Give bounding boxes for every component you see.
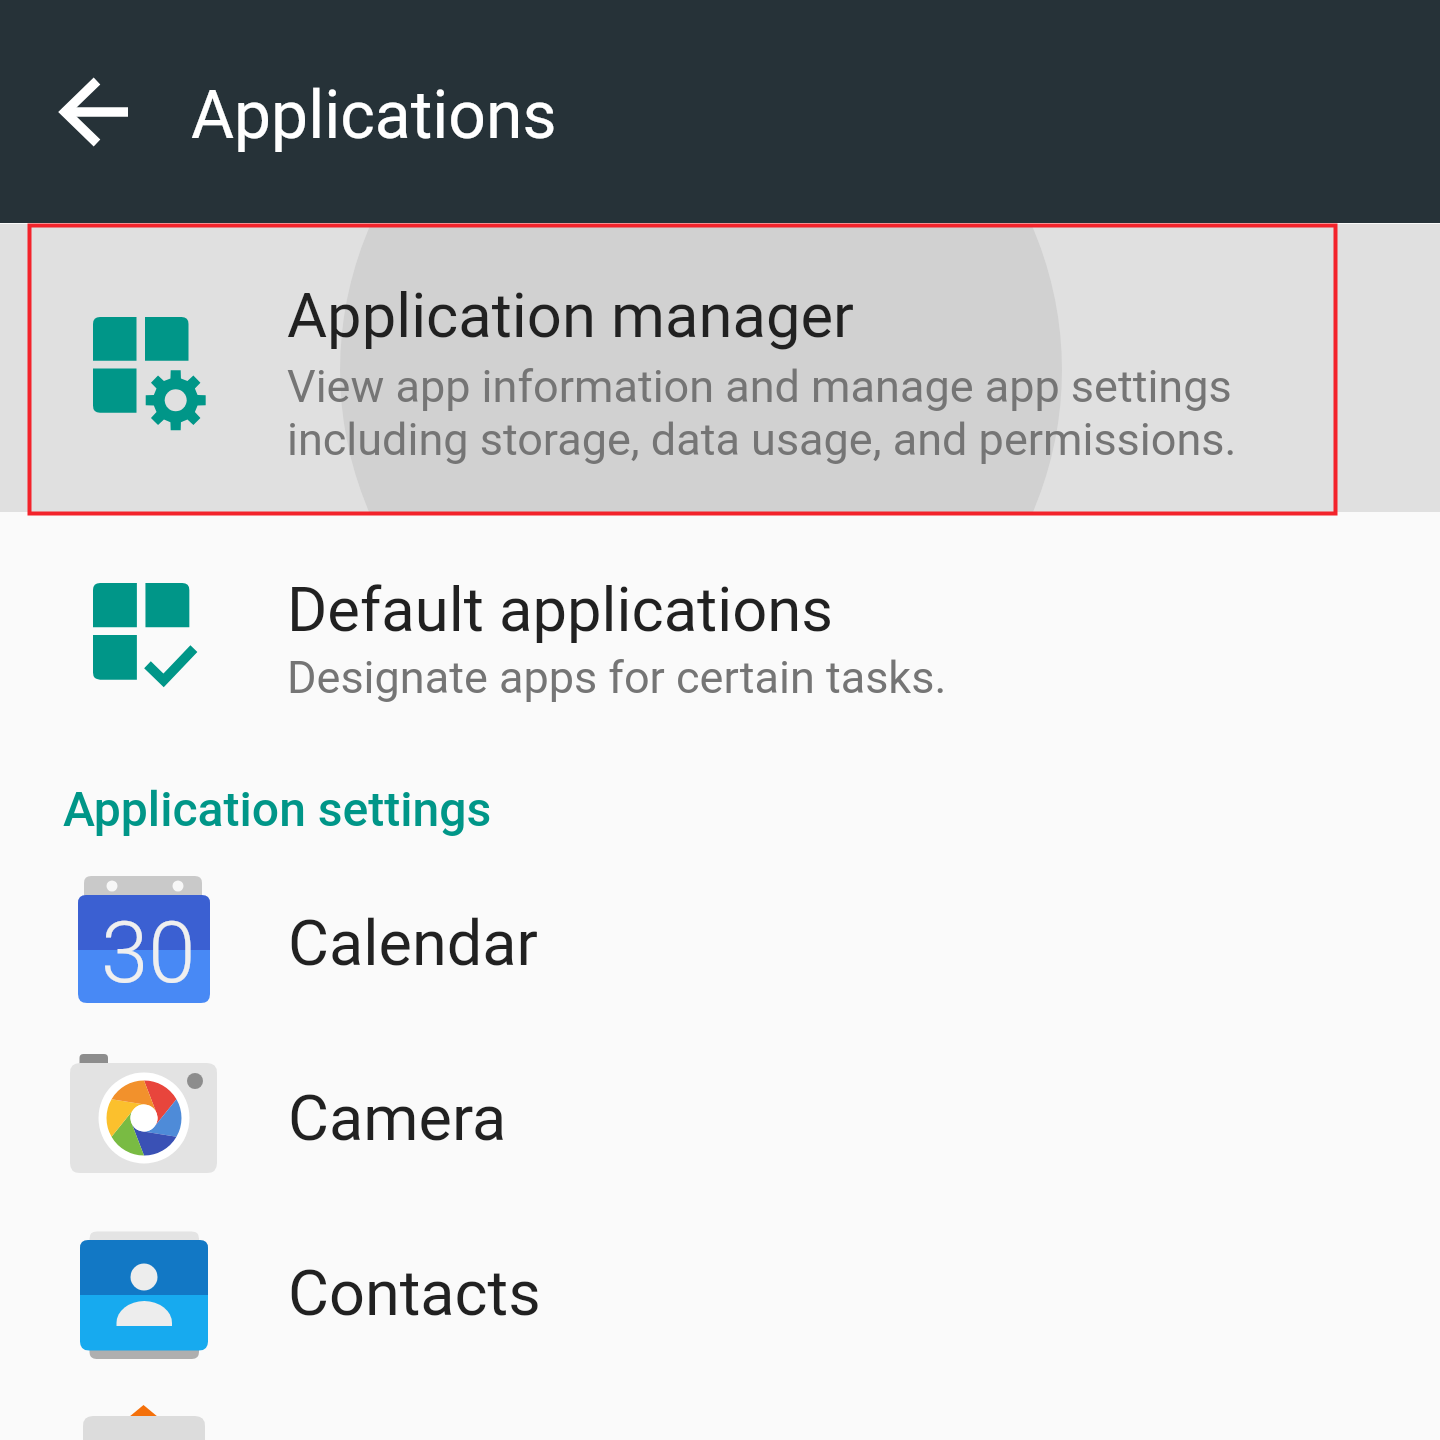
button[interactable]: Back [35,52,155,172]
staticText: View app information and manage app sett… [287,360,1232,413]
staticText: Camera [288,1082,507,1156]
staticText: including storage, data usage, and permi… [287,413,1237,466]
staticText: Contacts [288,1257,541,1331]
staticText: Default applications [287,574,833,646]
button[interactable]: Contacts [0,1201,1440,1376]
button[interactable]: Default applications [0,513,1440,735]
button[interactable]: 30 [0,851,1440,1026]
button[interactable]: Application manager [0,224,1440,512]
staticText: Applications [191,77,557,154]
button[interactable]: Camera [0,1026,1440,1201]
staticText: Application settings [63,781,492,837]
staticText: 30 [101,903,196,1003]
staticText: Designate apps for certain tasks. [287,651,947,704]
button[interactable]: Gallery [0,1376,1440,1440]
staticText: Calendar [288,907,538,981]
staticText: Application manager [287,280,854,352]
